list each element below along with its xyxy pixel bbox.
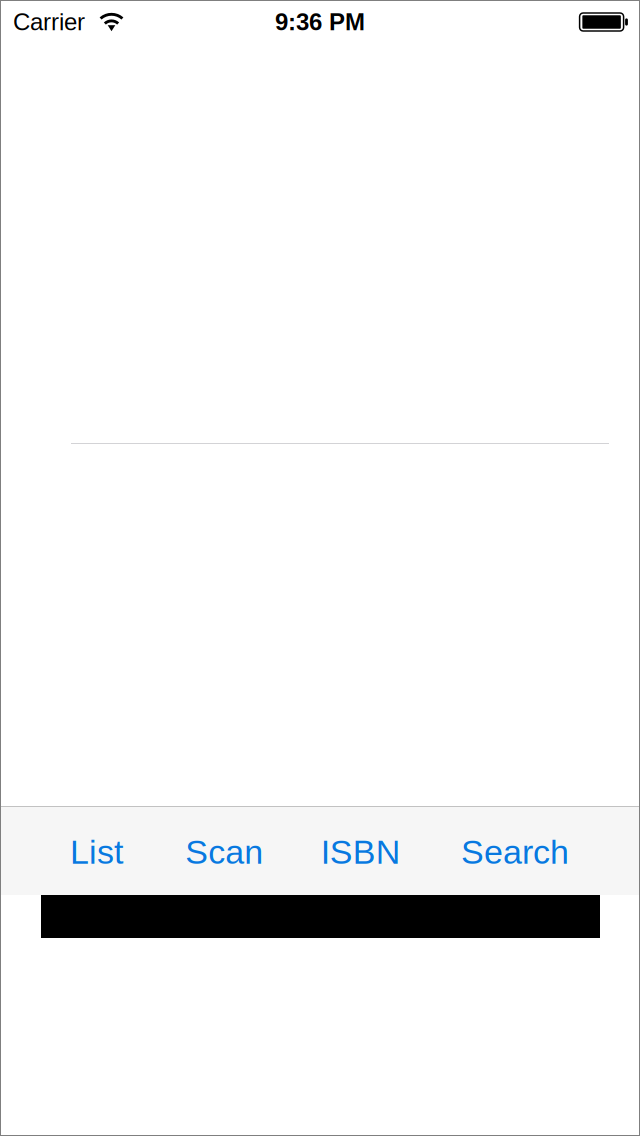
staticText: List — [70, 833, 123, 871]
staticText: Scan — [185, 833, 263, 871]
staticText: Carrier — [13, 9, 85, 35]
button[interactable]: Scan — [185, 806, 263, 894]
button[interactable]: Search — [461, 806, 569, 894]
button[interactable]: ISBN — [321, 806, 401, 894]
staticText: 9:36 PM — [275, 9, 365, 35]
staticText: Search — [461, 833, 569, 871]
staticText: ISBN — [321, 833, 401, 871]
button[interactable]: List — [70, 806, 123, 894]
